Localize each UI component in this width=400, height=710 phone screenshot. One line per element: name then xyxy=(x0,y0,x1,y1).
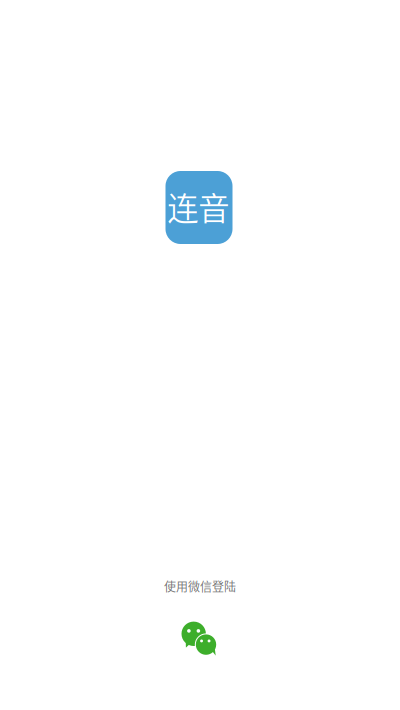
button[interactable]: 使用微信登陆 xyxy=(164,577,236,656)
staticText: 使用微信登陆 xyxy=(164,578,236,595)
staticText: 连音 xyxy=(167,184,229,229)
